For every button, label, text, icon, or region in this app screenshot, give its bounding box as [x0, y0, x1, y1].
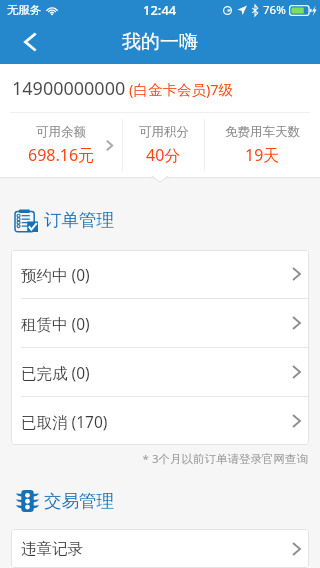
staticText: 免费用车天数 — [225, 124, 300, 140]
staticText: * 3个月以前订单请登录官网查询 — [142, 451, 308, 467]
button[interactable]: 免费用车天数 — [205, 113, 320, 177]
staticText: 698.16元 — [28, 144, 95, 166]
staticText: 违章记录 — [21, 539, 83, 559]
staticText: 已取消 (170) — [21, 411, 108, 432]
button[interactable]: 已完成 (0) — [11, 348, 309, 396]
button[interactable]: 已取消 (170) — [11, 397, 309, 445]
button[interactable]: 可用积分 — [123, 113, 204, 177]
staticText: 订单管理 — [44, 209, 114, 231]
button[interactable]: 违章记录 — [11, 529, 309, 568]
staticText: 租赁中 (0) — [21, 313, 90, 334]
staticText: 已完成 (0) — [21, 362, 90, 383]
staticText: 我的一嗨 — [122, 30, 198, 54]
staticText: 19天 — [245, 144, 280, 166]
staticText: 14900000000 (白金卡会员)7级 — [12, 76, 234, 101]
staticText: 预约中 (0) — [21, 264, 90, 285]
staticText: 可用余额 — [36, 124, 86, 140]
staticText: 可用积分 — [139, 124, 189, 140]
staticText: 76% — [263, 2, 286, 18]
staticText: 40分 — [146, 144, 181, 166]
staticText: 12:44 — [143, 1, 177, 19]
button[interactable]: 租赁中 (0) — [11, 299, 309, 347]
button[interactable]: 可用余额 — [0, 113, 122, 177]
staticText: 无服务 — [7, 3, 42, 17]
staticText: 交易管理 — [44, 490, 114, 512]
button[interactable]: 预约中 (0) — [11, 250, 309, 298]
button[interactable]: Back — [0, 20, 60, 64]
